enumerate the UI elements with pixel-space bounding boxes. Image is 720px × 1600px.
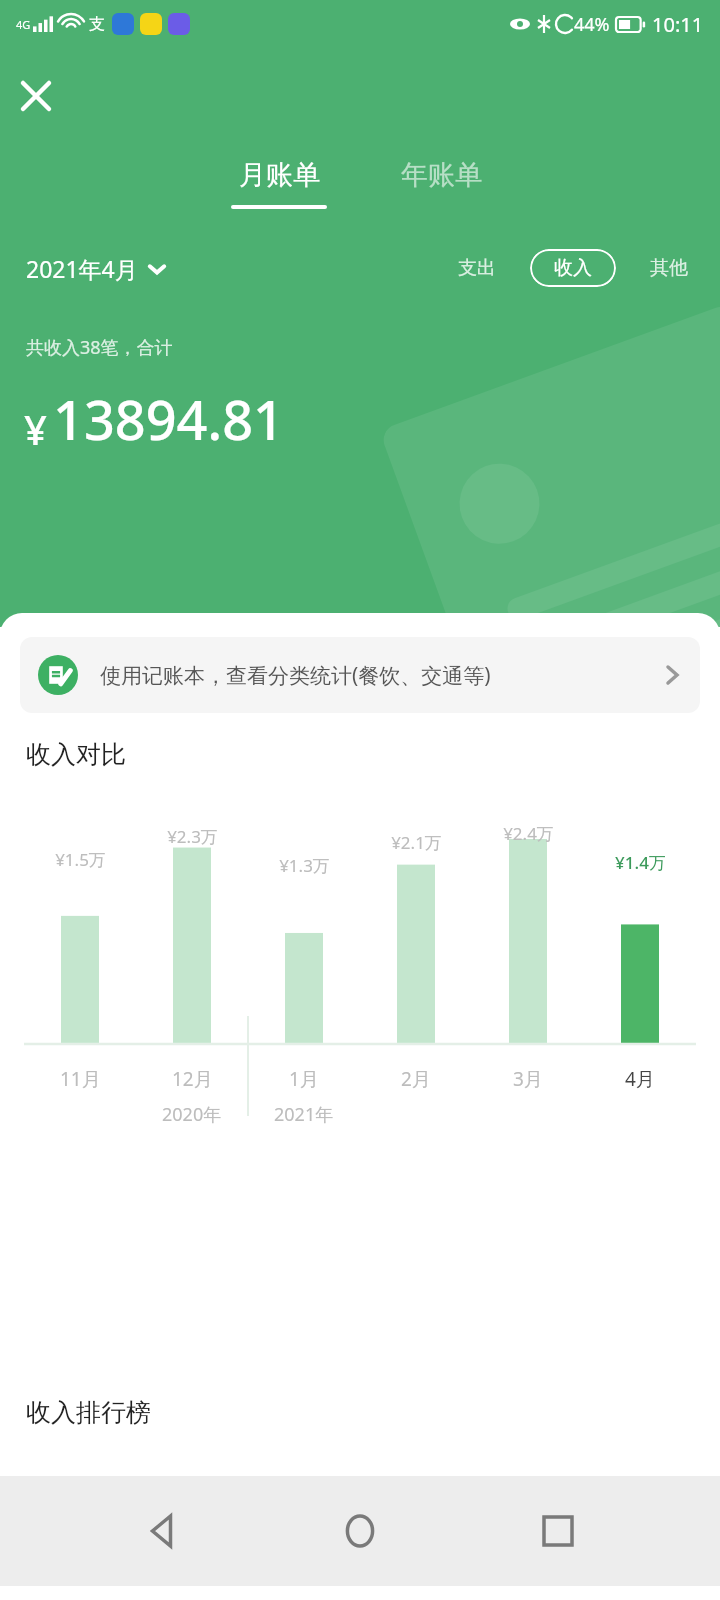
staticText: 1月: [289, 1066, 319, 1092]
staticText: 13894.81: [53, 382, 284, 456]
staticText: 共收入38笔，合计: [26, 335, 173, 360]
staticText: 支: [89, 14, 105, 34]
button[interactable]: Back: [128, 1496, 198, 1566]
button[interactable]: 支出: [452, 250, 502, 286]
button[interactable]: 2021年4月: [26, 253, 166, 284]
staticText: 10:11: [652, 11, 704, 38]
staticText: 收入排行榜: [26, 1397, 151, 1428]
staticText: 2021年4月: [26, 253, 138, 284]
staticText: 年账单: [401, 158, 482, 192]
button[interactable]: Close: [10, 70, 62, 122]
button[interactable]: 月账单: [223, 154, 335, 213]
staticText: 11月: [60, 1066, 101, 1092]
staticText: 2月: [401, 1066, 431, 1092]
staticText: ¥1.5万: [55, 848, 106, 871]
staticText: 收入: [554, 256, 592, 280]
staticText: 收入对比: [26, 739, 126, 770]
staticText: ¥1.3万: [279, 854, 330, 877]
staticText: ¥2.4万: [503, 822, 554, 845]
staticText: 3月: [513, 1066, 543, 1092]
button[interactable]: Home: [325, 1496, 395, 1566]
staticText: ¥: [24, 402, 47, 456]
staticText: ¥1.4万: [615, 851, 666, 874]
button[interactable]: Recents: [523, 1496, 593, 1566]
staticText: 2021年: [274, 1102, 334, 1127]
staticText: ¥2.3万: [167, 825, 218, 848]
button[interactable]: 使用记账本，查看分类统计(餐饮、交通等): [20, 637, 700, 713]
staticText: 月账单: [239, 158, 320, 192]
button[interactable]: 年账单: [385, 154, 497, 213]
button[interactable]: 收入: [530, 249, 616, 287]
staticText: 12月: [172, 1066, 213, 1092]
staticText: 44%: [574, 12, 610, 37]
staticText: 使用记账本，查看分类统计(餐饮、交通等): [100, 661, 648, 690]
staticText: 2020年: [162, 1102, 222, 1127]
staticText: 4月: [625, 1066, 655, 1092]
button[interactable]: 其他: [644, 250, 694, 286]
staticText: ¥2.1万: [391, 831, 442, 854]
staticText: 4G: [16, 17, 31, 32]
